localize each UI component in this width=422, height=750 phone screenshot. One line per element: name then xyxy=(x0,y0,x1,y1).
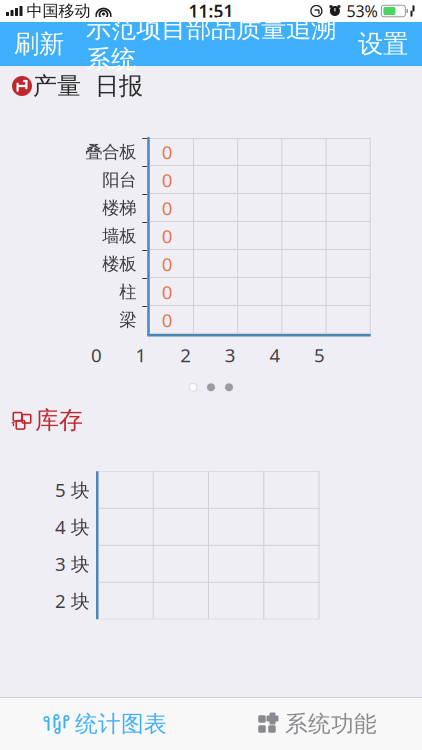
staticText: 产量 xyxy=(33,71,81,101)
staticText: 中国移动 xyxy=(26,1,90,21)
staticText: 0 xyxy=(162,308,173,332)
staticText: 刷新 xyxy=(14,28,64,59)
staticText: 楼板 xyxy=(102,253,136,275)
staticText: 系统功能 xyxy=(285,710,377,738)
staticText: 1 xyxy=(136,342,147,367)
button[interactable]: 设置 xyxy=(346,20,420,67)
staticText: 日报 xyxy=(95,71,143,101)
staticText: 11:51 xyxy=(188,0,233,22)
staticText: 3 xyxy=(225,342,236,367)
staticText: 墙板 xyxy=(102,225,136,247)
staticText: 0 xyxy=(162,196,173,220)
staticText: 设置 xyxy=(358,28,408,59)
staticText: 柱 xyxy=(119,281,136,303)
staticText: 梁 xyxy=(119,309,136,331)
staticText: 5 xyxy=(314,342,325,367)
staticText: 5 块 xyxy=(55,477,90,502)
staticText: 0 xyxy=(162,168,173,192)
staticText: 叠合板 xyxy=(85,141,136,163)
staticText: 统计图表 xyxy=(75,710,167,738)
staticText: 0 xyxy=(162,224,173,248)
staticText: 2 xyxy=(180,342,191,367)
staticText: 阳台 xyxy=(102,169,136,191)
staticText: 4 xyxy=(269,342,280,367)
button[interactable]: 刷新 xyxy=(2,20,76,67)
button[interactable]: 统计图表 xyxy=(0,698,211,750)
staticText: 53% xyxy=(346,0,377,22)
staticText: 0 xyxy=(91,342,102,367)
staticText: 0 xyxy=(162,280,173,304)
staticText: 示范项目部品质量追溯系统 xyxy=(86,13,336,75)
staticText: 库存 xyxy=(35,406,83,435)
staticText: 0 xyxy=(162,252,173,276)
staticText: 3 块 xyxy=(55,551,90,576)
staticText: 0 xyxy=(162,140,173,164)
staticText: 楼梯 xyxy=(102,197,136,219)
staticText: 2 块 xyxy=(55,588,90,613)
button[interactable]: 系统功能 xyxy=(211,698,422,750)
staticText: 4 块 xyxy=(55,514,90,539)
